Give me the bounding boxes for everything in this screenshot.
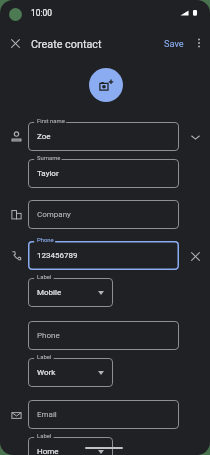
staticText: Label bbox=[37, 354, 52, 361]
button[interactable]: Label bbox=[28, 437, 113, 455]
staticText: 123456789 bbox=[37, 251, 78, 260]
staticText: Company bbox=[37, 210, 71, 219]
staticText: Label bbox=[37, 433, 52, 440]
button[interactable]: Add photo bbox=[89, 68, 123, 102]
button[interactable]: Label bbox=[28, 358, 113, 387]
staticText: Phone bbox=[37, 237, 54, 244]
button[interactable]: Phone bbox=[28, 321, 179, 350]
button[interactable]: Email bbox=[28, 400, 179, 429]
staticText: Email bbox=[37, 410, 57, 419]
staticText: Phone bbox=[37, 331, 60, 340]
staticText: Save bbox=[164, 38, 184, 49]
button[interactable]: Remove phone number bbox=[186, 247, 204, 265]
button[interactable]: Phone bbox=[28, 241, 179, 270]
staticText: Mobile bbox=[37, 288, 62, 297]
button[interactable]: First name bbox=[28, 122, 179, 151]
staticText: Taylor bbox=[37, 169, 59, 178]
button[interactable]: Company bbox=[28, 200, 179, 229]
button[interactable]: Surname bbox=[28, 159, 179, 188]
staticText: Zoe bbox=[37, 132, 51, 141]
staticText: Home bbox=[37, 447, 59, 455]
staticText: First name bbox=[37, 118, 65, 125]
button[interactable]: Label bbox=[28, 278, 113, 307]
button[interactable]: More options bbox=[190, 34, 207, 51]
button[interactable]: Save bbox=[161, 34, 187, 52]
staticText: Work bbox=[37, 368, 56, 377]
staticText: Label bbox=[37, 274, 52, 281]
staticText: Surname bbox=[37, 155, 61, 162]
staticText: Create contact bbox=[31, 38, 102, 51]
button[interactable]: Expand name fields bbox=[186, 128, 204, 146]
button[interactable]: Close bbox=[6, 34, 24, 52]
staticText: 10:00 bbox=[31, 8, 52, 18]
